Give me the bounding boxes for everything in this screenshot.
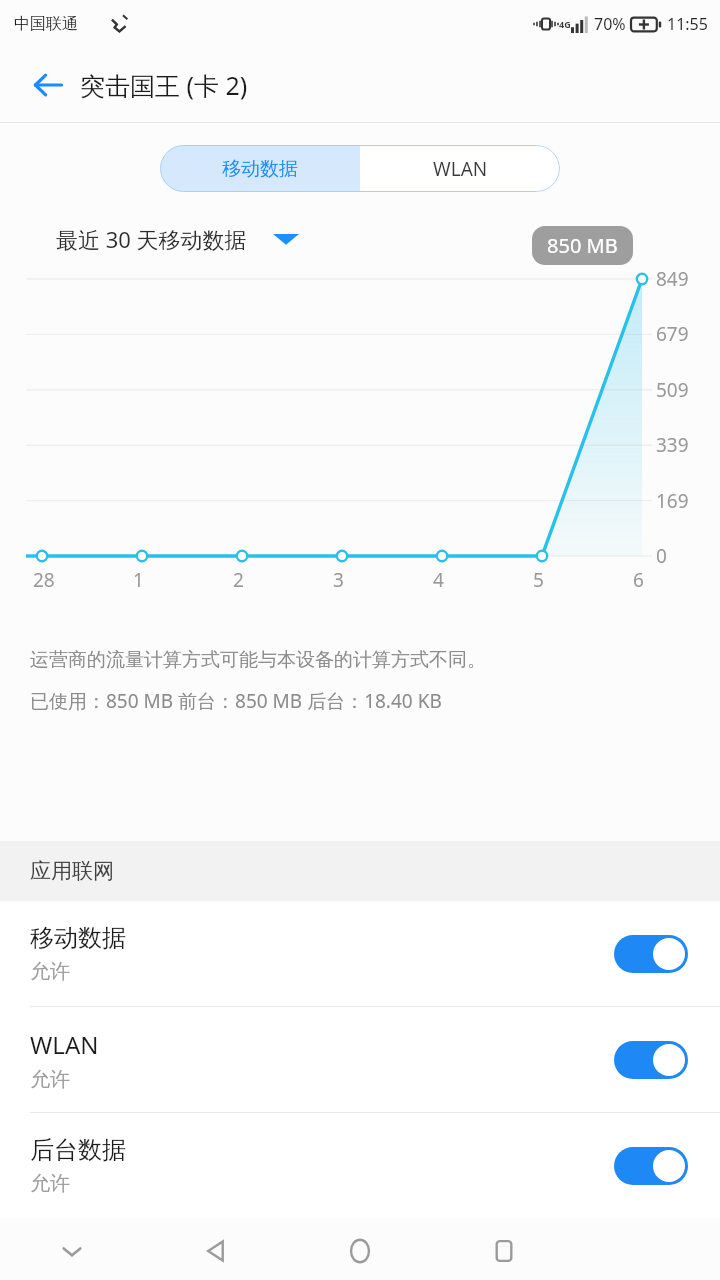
staticText: 5 — [533, 567, 544, 593]
staticText: 4 — [433, 567, 444, 593]
button[interactable]: Recent apps — [432, 1222, 576, 1280]
staticText: 28 — [33, 567, 55, 593]
staticText: 169 — [656, 488, 689, 514]
staticText: WLAN — [30, 1028, 99, 1061]
button[interactable]: Back — [20, 57, 76, 113]
staticText: 最近 30 天移动数据 — [56, 224, 247, 254]
staticText: 850 MB — [547, 232, 618, 259]
staticText: 移动数据 — [222, 157, 298, 181]
staticText: 后台数据 — [30, 1135, 126, 1165]
button[interactable]: 移动数据 — [160, 145, 360, 192]
staticText: 849 — [656, 266, 689, 292]
staticText: 中国联通 — [14, 14, 78, 34]
staticText: 已使用：850 MB 前台：850 MB 后台：18.40 KB — [30, 688, 442, 714]
staticText: 509 — [656, 377, 689, 403]
staticText: 70% — [594, 13, 626, 35]
staticText: 679 — [656, 321, 689, 347]
staticText: 0 — [656, 543, 667, 569]
staticText: 允许 — [30, 959, 70, 984]
button[interactable]: WLAN — [360, 145, 560, 192]
button[interactable]: Hide navigation bar — [0, 1222, 144, 1280]
button[interactable]: Home — [288, 1222, 432, 1280]
staticText: WLAN — [433, 156, 488, 182]
staticText: 11:55 — [667, 13, 708, 35]
staticText: 应用联网 — [30, 858, 114, 884]
button[interactable]: 后台数据 — [0, 1113, 720, 1218]
staticText: 339 — [656, 432, 689, 458]
staticText: 4G — [559, 18, 571, 30]
staticText: 突击国王 (卡 2) — [80, 68, 248, 102]
button[interactable]: 移动数据 — [0, 901, 720, 1006]
staticText: 1 — [133, 567, 144, 593]
staticText: 2 — [233, 567, 244, 593]
staticText: 允许 — [30, 1171, 70, 1196]
button[interactable]: WLAN — [0, 1007, 720, 1112]
button[interactable]: Back — [144, 1222, 288, 1280]
staticText: 运营商的流量计算方式可能与本设备的计算方式不同。 — [30, 648, 486, 672]
staticText: 3 — [333, 567, 344, 593]
button[interactable]: 最近 30 天移动数据 — [0, 214, 720, 264]
staticText: 移动数据 — [30, 923, 126, 953]
staticText: 6 — [633, 567, 644, 593]
staticText: 允许 — [30, 1067, 70, 1092]
